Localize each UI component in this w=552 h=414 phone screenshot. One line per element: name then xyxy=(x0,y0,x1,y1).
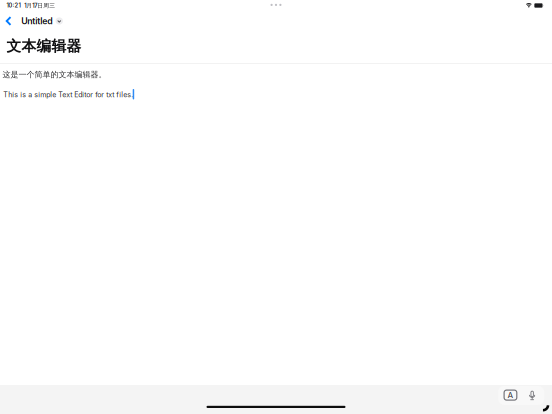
staticText: 这是一个简单的文本编辑器。 xyxy=(3,70,107,80)
staticText: 1月17日周三 xyxy=(24,2,55,9)
button[interactable]: Multitasking controls xyxy=(263,0,289,9)
button[interactable]: Dictation xyxy=(523,386,544,405)
button[interactable]: Back xyxy=(3,13,14,29)
staticText: A xyxy=(507,390,513,400)
button[interactable]: Hide keyboard xyxy=(498,386,523,405)
staticText: This is a simple Text Editor for txt fil… xyxy=(3,90,133,99)
staticText: 10:21 xyxy=(7,2,21,9)
staticText: 文本编辑器 xyxy=(6,37,81,55)
staticText: Untitled xyxy=(21,16,52,26)
button[interactable]: Untitled xyxy=(14,13,65,29)
